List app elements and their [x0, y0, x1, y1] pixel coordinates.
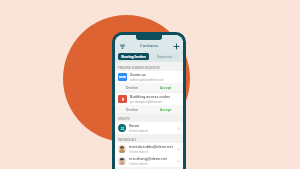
staticText: INDIVIDUALS — [118, 138, 137, 142]
button[interactable]: Decline — [115, 105, 149, 113]
button[interactable]: Sharing Invites — [118, 53, 149, 60]
button[interactable]: marisla.tubbs@idene.net — [115, 143, 183, 155]
staticText: Sharing Invites — [121, 54, 146, 59]
button[interactable]: Decline — [115, 83, 149, 91]
staticText: jon.thompson@idene.net — [130, 100, 163, 104]
button[interactable]: Accept — [149, 105, 183, 113]
staticText: Decline — [126, 107, 138, 112]
staticText: Contacts — [140, 43, 158, 49]
staticText: Accept — [160, 85, 172, 90]
button[interactable]: zoom — [115, 71, 183, 83]
button[interactable]: Accept — [149, 83, 183, 91]
staticText: GROUPS — [118, 117, 130, 121]
staticText: Requests — [157, 54, 172, 59]
staticText: zoom — [119, 75, 127, 79]
staticText: 4 items shared — [129, 129, 148, 133]
button[interactable]: Requests — [149, 53, 180, 60]
staticText: Accept — [160, 107, 172, 112]
button[interactable]: eric.zhang@idene.net — [115, 155, 183, 167]
staticText: Zoom.us — [130, 72, 146, 77]
button[interactable]: Building access codes — [115, 93, 183, 105]
button[interactable]: Add contact — [172, 42, 180, 50]
button[interactable]: Filter — [118, 42, 126, 50]
staticText: PENDING SHARING REQUESTS — [118, 66, 160, 70]
staticText: william.jackson@idene.net — [130, 78, 164, 82]
staticText: Decline — [126, 85, 138, 90]
staticText: eric.zhang@idene.net — [129, 156, 167, 161]
button[interactable]: Karen — [115, 122, 183, 134]
staticText: 3 items shared — [129, 162, 148, 166]
staticText: Building access codes — [130, 94, 171, 99]
staticText: marisla.tubbs@idene.net — [129, 144, 173, 149]
staticText: Karen — [129, 123, 140, 128]
staticText: 3 items shared — [129, 150, 148, 154]
